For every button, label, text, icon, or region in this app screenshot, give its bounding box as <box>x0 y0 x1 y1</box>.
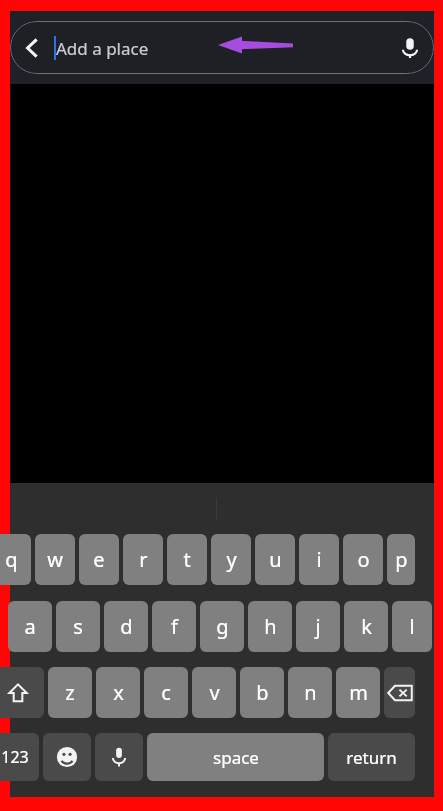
staticText: 123 <box>1 746 29 768</box>
staticText: y <box>226 546 237 573</box>
staticText: o <box>357 546 370 573</box>
staticText: h <box>264 613 277 640</box>
staticText: i <box>316 546 322 573</box>
staticText: d <box>120 613 133 640</box>
staticText: x <box>113 679 124 706</box>
button[interactable]: Emoji <box>43 733 91 781</box>
button[interactable]: l <box>392 601 432 652</box>
other: Backspace <box>384 667 415 718</box>
button[interactable]: Back <box>10 21 434 74</box>
button[interactable]: w <box>35 534 75 585</box>
button[interactable]: f <box>152 601 196 652</box>
staticText: v <box>209 679 220 706</box>
button[interactable]: return <box>328 733 415 781</box>
staticText: space <box>213 746 259 769</box>
button[interactable]: space <box>147 733 324 781</box>
button[interactable]: Voice input <box>95 733 143 781</box>
button[interactable]: q <box>0 534 31 585</box>
button[interactable]: Backspace <box>384 667 415 718</box>
staticText: return <box>346 746 397 769</box>
button[interactable]: c <box>144 667 188 718</box>
staticText: b <box>256 679 269 706</box>
button[interactable]: j <box>296 601 340 652</box>
other: Voice input <box>95 733 143 781</box>
button[interactable]: e <box>79 534 119 585</box>
button[interactable]: k <box>344 601 388 652</box>
staticText: z <box>65 679 75 706</box>
staticText: j <box>315 613 321 640</box>
staticText: a <box>24 613 36 640</box>
button[interactable]: s <box>56 601 100 652</box>
button[interactable]: y <box>211 534 251 585</box>
button[interactable]: i <box>299 534 339 585</box>
button[interactable]: 123 <box>0 733 39 781</box>
other: Shift <box>0 667 44 718</box>
staticText: n <box>304 679 317 706</box>
staticText: m <box>349 679 368 706</box>
button[interactable]: u <box>255 534 295 585</box>
staticText: c <box>161 679 171 706</box>
staticText: u <box>269 546 282 573</box>
button[interactable]: p <box>387 534 415 585</box>
staticText: q <box>5 546 18 573</box>
button[interactable]: g <box>200 601 244 652</box>
button[interactable]: z <box>48 667 92 718</box>
button[interactable]: Voice search <box>386 21 434 74</box>
staticText: r <box>139 546 148 573</box>
button[interactable]: b <box>240 667 284 718</box>
button[interactable]: d <box>104 601 148 652</box>
staticText: t <box>183 546 191 573</box>
staticText: Add a place <box>56 37 149 60</box>
button[interactable]: m <box>336 667 380 718</box>
staticText: k <box>361 613 372 640</box>
button[interactable]: r <box>123 534 163 585</box>
button[interactable]: v <box>192 667 236 718</box>
button[interactable]: x <box>96 667 140 718</box>
other: Emoji <box>43 733 91 781</box>
staticText: g <box>216 613 229 640</box>
button[interactable]: a <box>8 601 52 652</box>
button[interactable]: h <box>248 601 292 652</box>
button[interactable]: Shift <box>0 667 44 718</box>
staticText: s <box>73 613 83 640</box>
staticText: w <box>47 546 63 573</box>
staticText: l <box>409 613 415 640</box>
button[interactable]: n <box>288 667 332 718</box>
button[interactable]: t <box>167 534 207 585</box>
staticText: f <box>171 613 178 640</box>
staticText: p <box>395 546 408 573</box>
button[interactable]: Back <box>10 21 54 74</box>
button[interactable]: o <box>343 534 383 585</box>
staticText: e <box>93 546 105 573</box>
